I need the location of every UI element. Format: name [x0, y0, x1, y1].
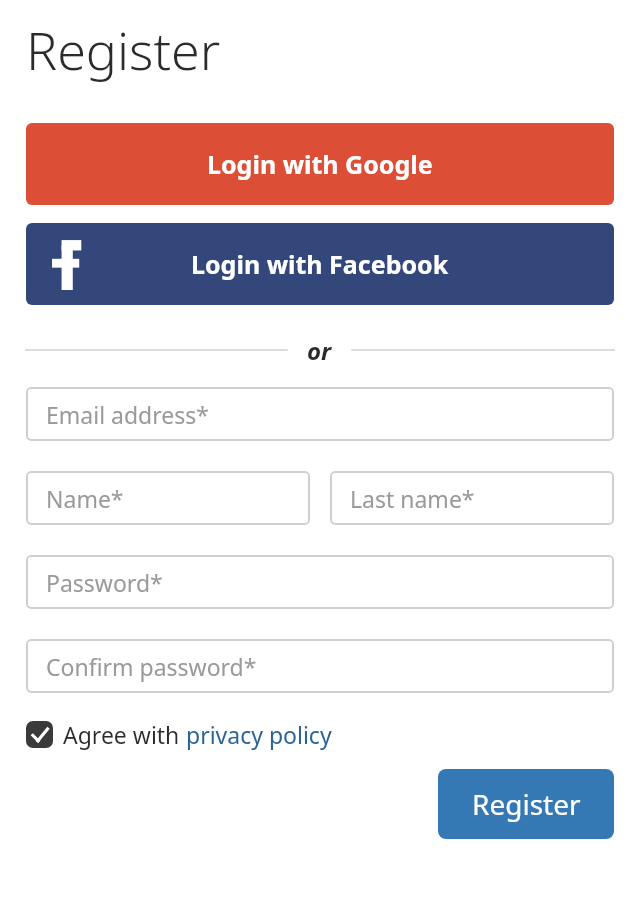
button[interactable]: Register: [438, 769, 614, 839]
staticText: Login with Facebook: [191, 247, 449, 281]
button[interactable]: Agree with: [26, 717, 332, 752]
staticText: Login with Google: [207, 147, 433, 181]
button[interactable]: privacy policy: [186, 719, 332, 750]
button[interactable]: Login with Google: [26, 123, 614, 205]
staticText: Confirm password*: [46, 651, 257, 682]
staticText: Last name*: [350, 483, 475, 514]
staticText: Email address*: [46, 399, 209, 430]
staticText: or: [307, 334, 332, 367]
staticText: Agree with: [63, 719, 186, 750]
staticText: Password*: [46, 567, 163, 598]
button[interactable]: Confirm password*: [26, 639, 614, 693]
button[interactable]: Last name*: [330, 471, 614, 525]
staticText: Register: [472, 785, 581, 823]
button[interactable]: Login with Facebook: [26, 223, 614, 305]
button[interactable]: Email address*: [26, 387, 614, 441]
button[interactable]: Password*: [26, 555, 614, 609]
staticText: Name*: [46, 483, 124, 514]
staticText: Register: [26, 14, 221, 85]
button[interactable]: Name*: [26, 471, 310, 525]
